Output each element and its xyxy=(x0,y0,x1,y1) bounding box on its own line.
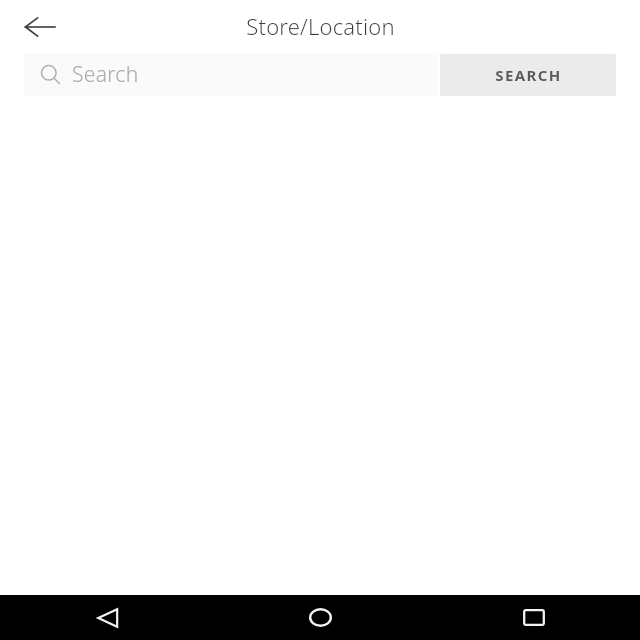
button[interactable]: Back xyxy=(0,595,214,640)
button[interactable]: Search xyxy=(24,53,438,96)
staticText: Search xyxy=(72,60,139,89)
button[interactable]: Home xyxy=(214,595,427,640)
button[interactable]: Back xyxy=(13,0,67,53)
staticText: Store/Location xyxy=(246,11,395,41)
button[interactable]: SEARCH xyxy=(440,54,616,96)
staticText: SEARCH xyxy=(495,65,562,85)
button[interactable]: Recent apps xyxy=(427,595,640,640)
